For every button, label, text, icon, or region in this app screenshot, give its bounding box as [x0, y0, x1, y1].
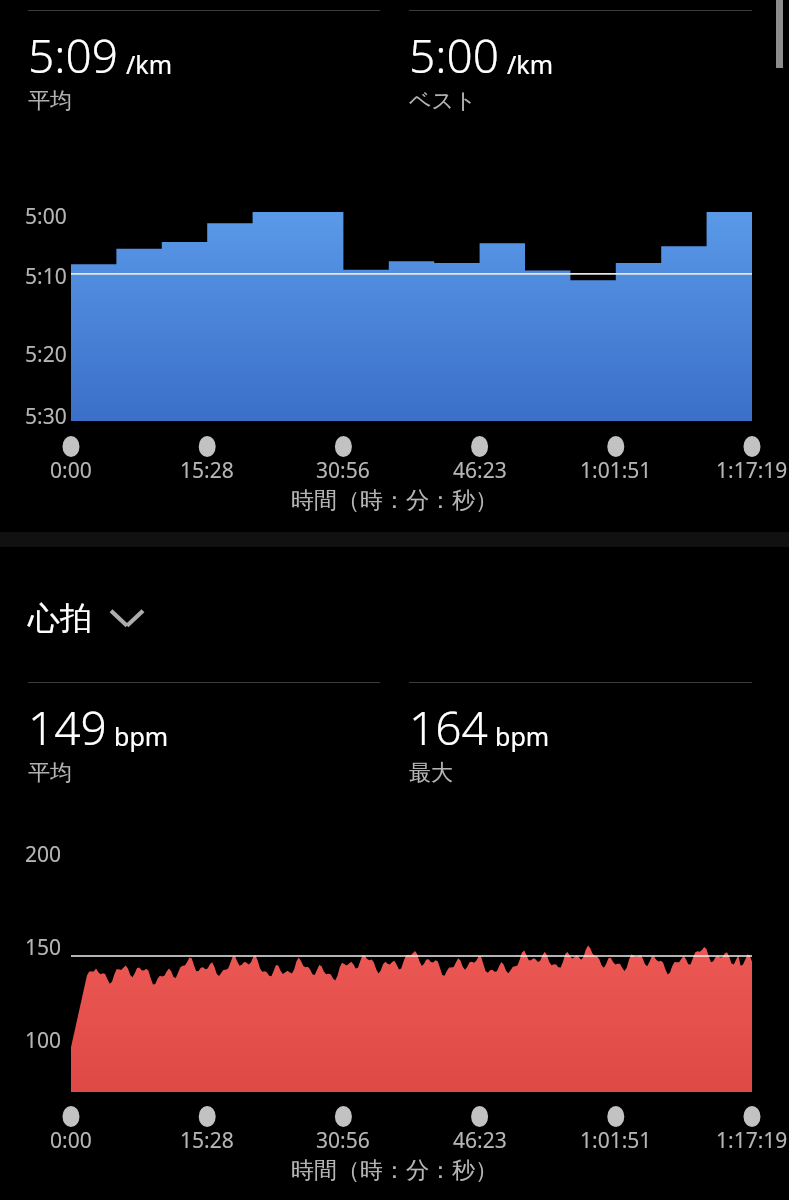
staticText: 46:23 [453, 1126, 507, 1155]
staticText: 1:17:19 [716, 1126, 788, 1155]
staticText: 46:23 [453, 456, 507, 485]
button[interactable]: 5:00 [409, 10, 752, 115]
staticText: 心拍 [28, 598, 92, 638]
button[interactable]: 164 [409, 682, 752, 787]
staticText: 時間（時：分：秒） [291, 1156, 498, 1185]
staticText: 1:17:19 [716, 456, 788, 485]
staticText: 最大 [409, 759, 453, 787]
staticText: 30:56 [316, 1126, 370, 1155]
staticText: 5:00 [409, 24, 500, 87]
staticText: 1:01:51 [580, 1126, 652, 1155]
staticText: bpm [114, 719, 169, 753]
staticText: 0:00 [50, 456, 92, 485]
other: Collapse heart rate section [108, 606, 146, 630]
button[interactable]: 5:09 [28, 10, 380, 115]
staticText: 0:00 [50, 1126, 92, 1155]
staticText: /km [507, 47, 554, 81]
staticText: 15:28 [180, 456, 234, 485]
staticText: 30:56 [316, 456, 370, 485]
staticText: 5:09 [28, 24, 119, 87]
staticText: 1:01:51 [580, 456, 652, 485]
staticText: bpm [495, 719, 550, 753]
button[interactable]: 149 [28, 682, 380, 787]
button[interactable]: 心拍 [28, 598, 156, 638]
staticText: 200 [25, 840, 62, 869]
staticText: ベスト [409, 87, 477, 115]
staticText: 149 [28, 696, 107, 759]
staticText: 平均 [28, 759, 72, 787]
staticText: 5:20 [25, 340, 67, 369]
staticText: 時間（時：分：秒） [291, 486, 498, 515]
staticText: 平均 [28, 87, 72, 115]
staticText: 164 [409, 696, 488, 759]
staticText: 5:00 [25, 202, 67, 231]
staticText: 100 [25, 1026, 62, 1055]
staticText: /km [126, 47, 173, 81]
staticText: 5:10 [25, 262, 67, 291]
staticText: 150 [25, 933, 62, 962]
staticText: 15:28 [180, 1126, 234, 1155]
staticText: 5:30 [25, 402, 67, 431]
